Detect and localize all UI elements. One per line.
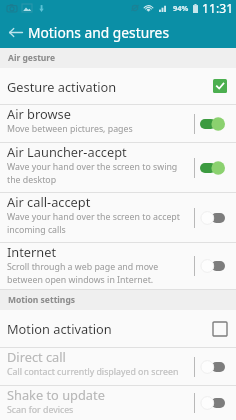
- staticText: Scan for devices: [7, 404, 74, 413]
- button[interactable]: Switch on: [200, 117, 225, 131]
- button[interactable]: Air call-accept: [0, 193, 236, 242]
- staticText: Motions and gestures: [28, 23, 170, 42]
- button[interactable]: Motion activation, off: [213, 322, 227, 336]
- staticText: Motion settings: [8, 294, 76, 306]
- button[interactable]: Direct call: [0, 348, 236, 385]
- button[interactable]: Navigate up: [0, 16, 28, 48]
- staticText: Direct call: [7, 348, 66, 365]
- staticText: Internet: [7, 243, 57, 260]
- staticText: Air Launcher-accept: [7, 143, 127, 160]
- button[interactable]: Switch off: [200, 360, 225, 374]
- button[interactable]: Switch on: [200, 161, 225, 175]
- button[interactable]: Gesture activation, on: [213, 79, 227, 93]
- button[interactable]: Switch off: [200, 396, 225, 410]
- staticText: Call contact currently displayed on scre…: [7, 366, 179, 378]
- button[interactable]: Internet: [0, 243, 236, 289]
- staticText: Shake to update: [7, 386, 105, 403]
- button[interactable]: Motion activation: [0, 310, 236, 347]
- button[interactable]: Air Launcher-accept: [0, 143, 236, 192]
- staticText: Wave your hand over the screen to swing …: [7, 161, 191, 185]
- staticText: Air call-accept: [7, 193, 91, 210]
- button[interactable]: Switch off: [200, 211, 225, 225]
- button[interactable]: Switch off: [200, 259, 225, 273]
- staticText: Gesture activation: [7, 78, 117, 95]
- staticText: Air gesture: [8, 52, 56, 64]
- staticText: Wave your hand over the screen to accept…: [7, 211, 191, 235]
- button[interactable]: Gesture activation: [0, 68, 236, 104]
- staticText: 11:31: [202, 0, 234, 16]
- staticText: Air browse: [7, 105, 71, 122]
- button[interactable]: Shake to update: [0, 386, 236, 420]
- button[interactable]: Air browse: [0, 105, 236, 142]
- staticText: 94%: [173, 3, 189, 13]
- staticText: Scroll through a web page and move betwe…: [7, 261, 191, 285]
- staticText: Move between pictures, pages: [7, 123, 133, 135]
- staticText: Motion activation: [7, 320, 112, 337]
